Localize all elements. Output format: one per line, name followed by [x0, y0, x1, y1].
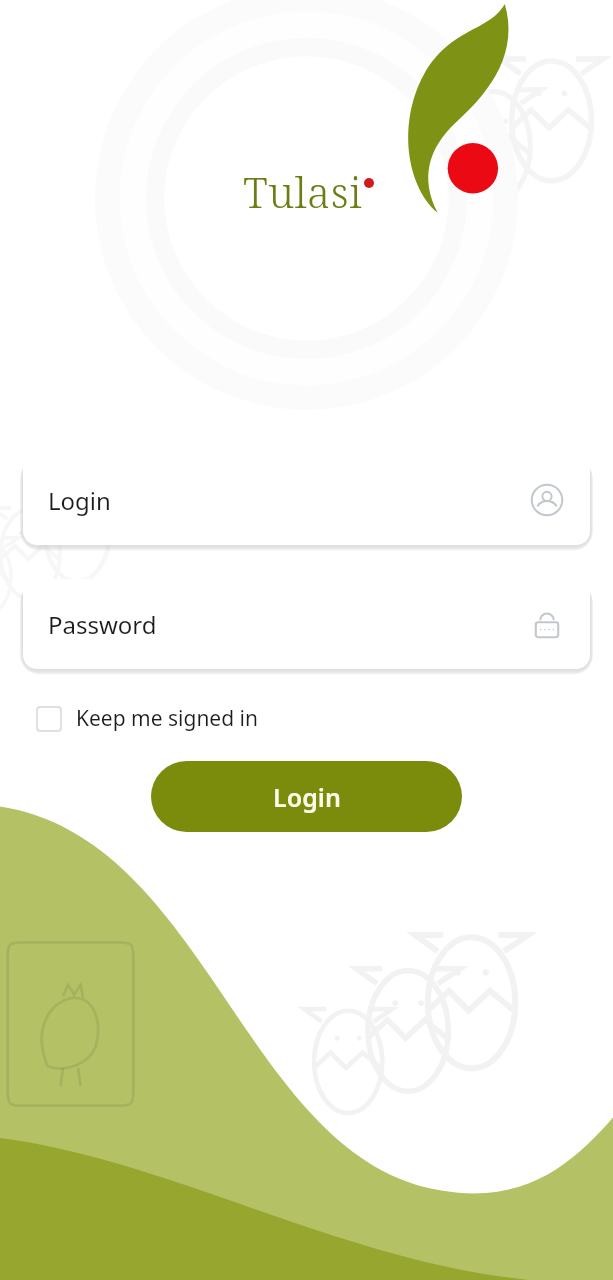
staticText: Password [48, 608, 530, 641]
button[interactable]: Password [23, 579, 590, 669]
button[interactable]: Login [23, 455, 590, 545]
staticText: Login [273, 780, 341, 814]
other: Password [530, 607, 564, 641]
button[interactable]: Login [151, 761, 462, 832]
button[interactable]: Keep me signed in [32, 698, 262, 739]
staticText: Tulasi [243, 163, 363, 220]
other: Login [530, 483, 564, 517]
staticText: Login [48, 484, 530, 517]
staticText: Keep me signed in [76, 704, 258, 733]
